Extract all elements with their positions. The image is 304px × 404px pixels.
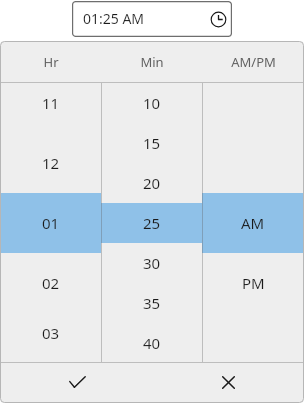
staticText: 15: [143, 133, 161, 153]
button[interactable]: 20: [101, 163, 202, 203]
button[interactable]: Open clock picker: [208, 9, 228, 29]
staticText: 03: [42, 323, 60, 343]
button[interactable]: 01:25 AM: [72, 1, 232, 37]
button[interactable]: Confirm: [0, 363, 152, 402]
staticText: 30: [143, 253, 161, 273]
staticText: AM/PM: [231, 53, 276, 71]
button[interactable]: 01: [0, 193, 101, 253]
button[interactable]: 03: [0, 313, 101, 352]
staticText: 25: [143, 213, 161, 233]
button[interactable]: AM: [202, 193, 304, 253]
button[interactable]: 02: [0, 253, 101, 313]
button[interactable]: Cancel: [152, 363, 304, 402]
staticText: 02: [42, 273, 60, 293]
button[interactable]: 12: [0, 133, 101, 193]
button[interactable]: 10: [101, 83, 202, 123]
button[interactable]: 30: [101, 243, 202, 283]
staticText: 40: [143, 333, 161, 353]
button[interactable]: Min: [101, 42, 202, 82]
staticText: 01:25 AM: [83, 9, 145, 28]
staticText: Hr: [43, 53, 59, 71]
button[interactable]: AM/PM: [202, 42, 304, 82]
staticText: 12: [42, 153, 60, 173]
staticText: 35: [143, 293, 161, 313]
staticText: Min: [140, 53, 164, 71]
button[interactable]: 40: [101, 323, 202, 362]
staticText: 11: [42, 93, 60, 113]
staticText: 10: [143, 93, 161, 113]
button[interactable]: 35: [101, 283, 202, 323]
button[interactable]: 25: [101, 203, 202, 243]
button[interactable]: 11: [0, 73, 101, 133]
staticText: PM: [242, 273, 265, 293]
button[interactable]: 15: [101, 123, 202, 163]
staticText: AM: [241, 213, 265, 233]
button[interactable]: PM: [202, 253, 304, 313]
staticText: 01: [42, 213, 60, 233]
button[interactable]: Hr: [0, 42, 101, 82]
staticText: 20: [143, 173, 161, 193]
